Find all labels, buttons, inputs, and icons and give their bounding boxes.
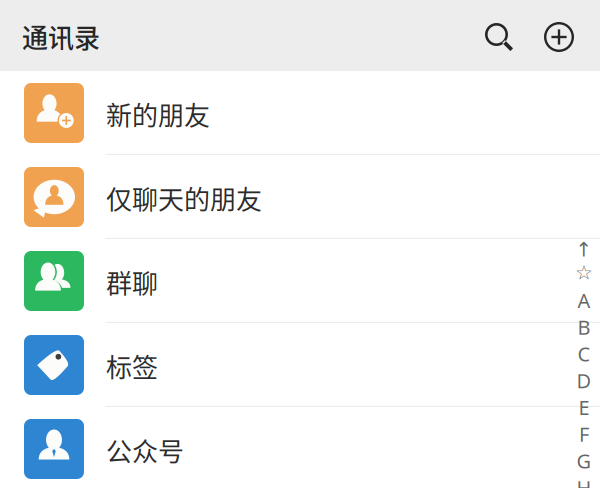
button[interactable]: H <box>573 475 595 488</box>
staticText: ☆ <box>575 261 593 284</box>
staticText: 群聊 <box>106 263 158 301</box>
staticText: 仅聊天的朋友 <box>106 179 262 217</box>
staticText: F <box>579 421 589 447</box>
staticText: 标签 <box>106 347 158 385</box>
staticText: D <box>576 367 591 394</box>
staticText: 通讯录 <box>22 17 100 55</box>
staticText: B <box>577 314 590 340</box>
button[interactable]: Starred <box>573 260 595 284</box>
staticText: ↑ <box>575 238 592 261</box>
button[interactable]: B <box>573 315 595 339</box>
staticText: E <box>578 394 589 421</box>
button[interactable]: A <box>573 288 595 312</box>
staticText: G <box>576 447 591 474</box>
staticText: H <box>576 474 591 488</box>
button[interactable]: Search <box>479 17 523 61</box>
button[interactable]: Scroll to top <box>573 237 595 261</box>
button[interactable]: 群聊 <box>0 239 600 323</box>
staticText: C <box>577 340 590 367</box>
staticText: A <box>577 287 590 314</box>
button[interactable]: 标签 <box>0 323 600 407</box>
staticText: 公众号 <box>106 431 184 469</box>
button[interactable]: G <box>573 449 595 473</box>
button[interactable]: F <box>573 422 595 446</box>
button[interactable]: 公众号 <box>0 407 600 488</box>
button[interactable]: 新的朋友 <box>0 71 600 155</box>
button[interactable]: D <box>573 368 595 392</box>
button[interactable]: C <box>573 342 595 366</box>
staticText: 新的朋友 <box>106 95 210 133</box>
button[interactable]: E <box>573 395 595 419</box>
button[interactable]: 仅聊天的朋友 <box>0 155 600 239</box>
button[interactable]: Add contact <box>537 15 581 59</box>
